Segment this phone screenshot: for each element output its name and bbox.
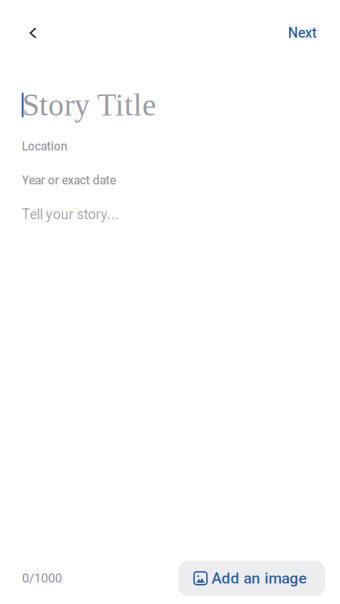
button[interactable]: Add an image — [179, 560, 325, 596]
staticText: Story Title — [22, 88, 156, 122]
staticText: Year or exact date — [22, 173, 116, 188]
button[interactable]: Story Title — [22, 89, 318, 121]
staticText: Location — [22, 139, 68, 154]
button[interactable]: Tell your story... — [22, 187, 318, 222]
button[interactable]: Location — [22, 121, 318, 153]
staticText: Next — [288, 25, 317, 41]
button[interactable]: Next — [283, 11, 322, 55]
staticText: Add an image — [212, 569, 307, 587]
staticText: 0/1000 — [22, 571, 62, 586]
button[interactable]: Year or exact date — [22, 153, 318, 187]
staticText: Tell your story... — [22, 206, 119, 223]
button[interactable]: Back — [20, 11, 46, 55]
